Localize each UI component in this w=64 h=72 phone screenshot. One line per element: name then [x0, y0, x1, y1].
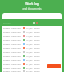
staticText: 20 Jan — [26, 59, 33, 62]
button[interactable]: Project Alpha doc — [3, 54, 61, 58]
button[interactable]: Project Alpha doc — [3, 58, 61, 62]
staticText: Project Alpha doc — [3, 51, 21, 54]
staticText: Project Alpha doc — [3, 55, 21, 58]
staticText: 15 Jan — [26, 39, 33, 42]
staticText: 08:00 hrs — [34, 59, 43, 62]
button[interactable]: Project Alpha doc — [3, 30, 61, 34]
staticText: 08:00 hrs — [34, 43, 43, 46]
staticText: 08:00 hrs — [34, 67, 43, 70]
button[interactable]: Add entry — [47, 64, 61, 68]
button[interactable]: Project Alpha doc — [3, 38, 61, 42]
staticText: Project Alpha doc — [3, 67, 21, 70]
staticText: 23 Jan — [26, 70, 33, 72]
staticText: 08:00 hrs — [34, 55, 43, 58]
staticText: Project Alpha doc — [3, 27, 21, 30]
staticText: 08:00 hrs — [34, 31, 43, 34]
staticText: 08:00 hrs — [34, 63, 43, 66]
staticText: Project Alpha doc — [3, 70, 21, 72]
staticText: Project Alpha doc — [3, 35, 21, 38]
staticText: 08:00 hrs — [34, 51, 43, 54]
staticText: Work log — [25, 2, 39, 6]
staticText: Project Alpha doc — [3, 59, 21, 62]
staticText: Entries — [3, 21, 11, 24]
staticText: 22 Jan — [26, 67, 33, 70]
staticText: Project Alpha doc — [3, 39, 21, 42]
staticText: and documents — [22, 7, 42, 11]
button[interactable]: Entries — [3, 19, 61, 26]
button[interactable]: Project Alpha doc — [3, 66, 61, 70]
button[interactable]: Project Alpha doc — [3, 42, 61, 46]
button[interactable]: Project Alpha doc — [3, 34, 61, 38]
staticText: 08:00 hrs — [34, 47, 43, 50]
button[interactable]: Project Alpha doc — [3, 46, 61, 50]
staticText: 14 Jan — [26, 35, 33, 38]
staticText: Project Alpha doc — [3, 43, 21, 46]
staticText: 21 Jan — [26, 63, 33, 66]
staticText: 08:00 hrs — [34, 70, 43, 72]
staticText: 08:00 hrs — [34, 27, 43, 30]
staticText: Project Alpha doc — [3, 47, 21, 50]
staticText: 08:00 hrs — [34, 35, 43, 38]
staticText: 18 Jan — [26, 51, 33, 54]
staticText: 12 Jan — [26, 27, 33, 30]
button[interactable]: Project Alpha doc — [3, 62, 61, 66]
staticText: 13 Jan — [26, 31, 33, 34]
button[interactable]: Project Alpha doc — [3, 70, 61, 72]
staticText: Project Alpha doc — [3, 63, 21, 66]
staticText: 17 Jan — [26, 47, 33, 50]
button[interactable]: Project Alpha doc — [3, 26, 61, 30]
staticText: 16 Jan — [26, 43, 33, 46]
staticText: 08:00 hrs — [34, 39, 43, 42]
staticText: 19 Jan — [26, 55, 33, 58]
button[interactable]: Project Alpha doc — [3, 50, 61, 54]
staticText: Project Alpha doc — [3, 31, 21, 34]
